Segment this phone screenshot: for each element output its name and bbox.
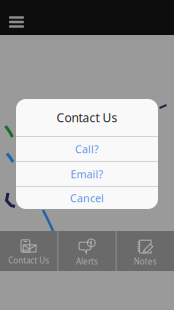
button[interactable]: Email? bbox=[16, 162, 158, 186]
staticText: Call? bbox=[75, 142, 99, 156]
staticText: Cancel bbox=[70, 191, 104, 205]
staticText: Contact Us bbox=[8, 255, 49, 266]
staticText: Notes bbox=[134, 256, 157, 267]
button[interactable]: Alerts bbox=[58, 231, 116, 271]
button[interactable]: Cancel bbox=[16, 187, 158, 209]
staticText: Alerts bbox=[76, 256, 98, 267]
button[interactable]: Call? bbox=[16, 137, 158, 161]
staticText: Contact Us bbox=[56, 109, 117, 125]
button[interactable]: Notes bbox=[117, 231, 174, 271]
staticText: Email? bbox=[70, 167, 103, 181]
button[interactable]: Menu bbox=[0, 1, 33, 34]
button[interactable]: Contact Us bbox=[0, 231, 57, 271]
